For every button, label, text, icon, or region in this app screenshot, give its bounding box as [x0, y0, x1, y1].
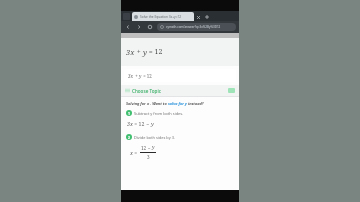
staticText: x — [130, 149, 133, 156]
staticText: Choose Topic — [132, 88, 161, 94]
staticText: y — [143, 47, 147, 57]
staticText: Divide both sides by 3. — [134, 135, 175, 140]
staticText: = — [133, 149, 139, 156]
staticText: solve for y — [168, 101, 187, 106]
button[interactable]: New tab — [203, 13, 210, 20]
staticText: = 12 — [142, 73, 152, 79]
staticText: + — [134, 73, 139, 79]
staticText: Solving for — [126, 101, 147, 106]
staticText: − — [148, 145, 152, 151]
staticText: 1 — [128, 111, 130, 116]
button[interactable]: Reload — [146, 23, 154, 31]
staticText: y — [151, 120, 154, 127]
button[interactable]: cymath.com/answer?q=3x%2By%3D12 — [157, 23, 236, 31]
staticText: − — [146, 120, 151, 127]
staticText: x — [147, 101, 150, 106]
staticText: cymath.com/answer?q=3x%2By%3D12 — [166, 25, 221, 29]
staticText: y — [152, 144, 155, 151]
staticText: instead? — [187, 101, 204, 106]
staticText: . Want to — [150, 101, 168, 106]
staticText: 3x — [127, 120, 133, 127]
staticText: 3x — [128, 73, 134, 79]
staticText: 3x — [126, 47, 135, 57]
staticText: = 12 — [147, 47, 163, 57]
button[interactable]: 3x — [121, 66, 239, 85]
staticText: 2 — [128, 135, 130, 140]
staticText: Solve the Equation 3x+y=12 — [140, 15, 182, 19]
button[interactable]: Back — [124, 23, 132, 31]
button[interactable]: Solve the Equation 3x+y=12 — [132, 12, 194, 21]
staticText: + — [135, 47, 143, 57]
staticText: Subtract y from both sides. — [134, 111, 184, 116]
button[interactable]: Choose Topic — [121, 85, 239, 96]
button[interactable]: Close tab — [195, 14, 201, 20]
button[interactable]: Forward — [135, 23, 143, 31]
staticText: 3 — [147, 154, 150, 160]
button[interactable]: solve for y — [168, 101, 187, 106]
staticText: 12 — [141, 145, 148, 151]
staticText: = 12 — [133, 120, 146, 127]
button[interactable]: Topic options — [228, 88, 235, 93]
staticText: y — [139, 73, 142, 79]
